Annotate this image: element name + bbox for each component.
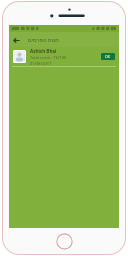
button[interactable]: Home xyxy=(56,233,73,250)
staticText: OK xyxy=(105,54,111,59)
button[interactable]: OK xyxy=(101,53,115,60)
staticText: Total score : 76/100 xyxy=(30,55,67,60)
staticText: 01/08/2017 xyxy=(30,61,52,66)
staticText: Ashish Bhai xyxy=(30,48,57,54)
button[interactable]: Ashish Bhai xyxy=(9,47,119,66)
button[interactable]: Back xyxy=(9,33,23,47)
staticText: חנות הפרסים xyxy=(28,36,59,43)
